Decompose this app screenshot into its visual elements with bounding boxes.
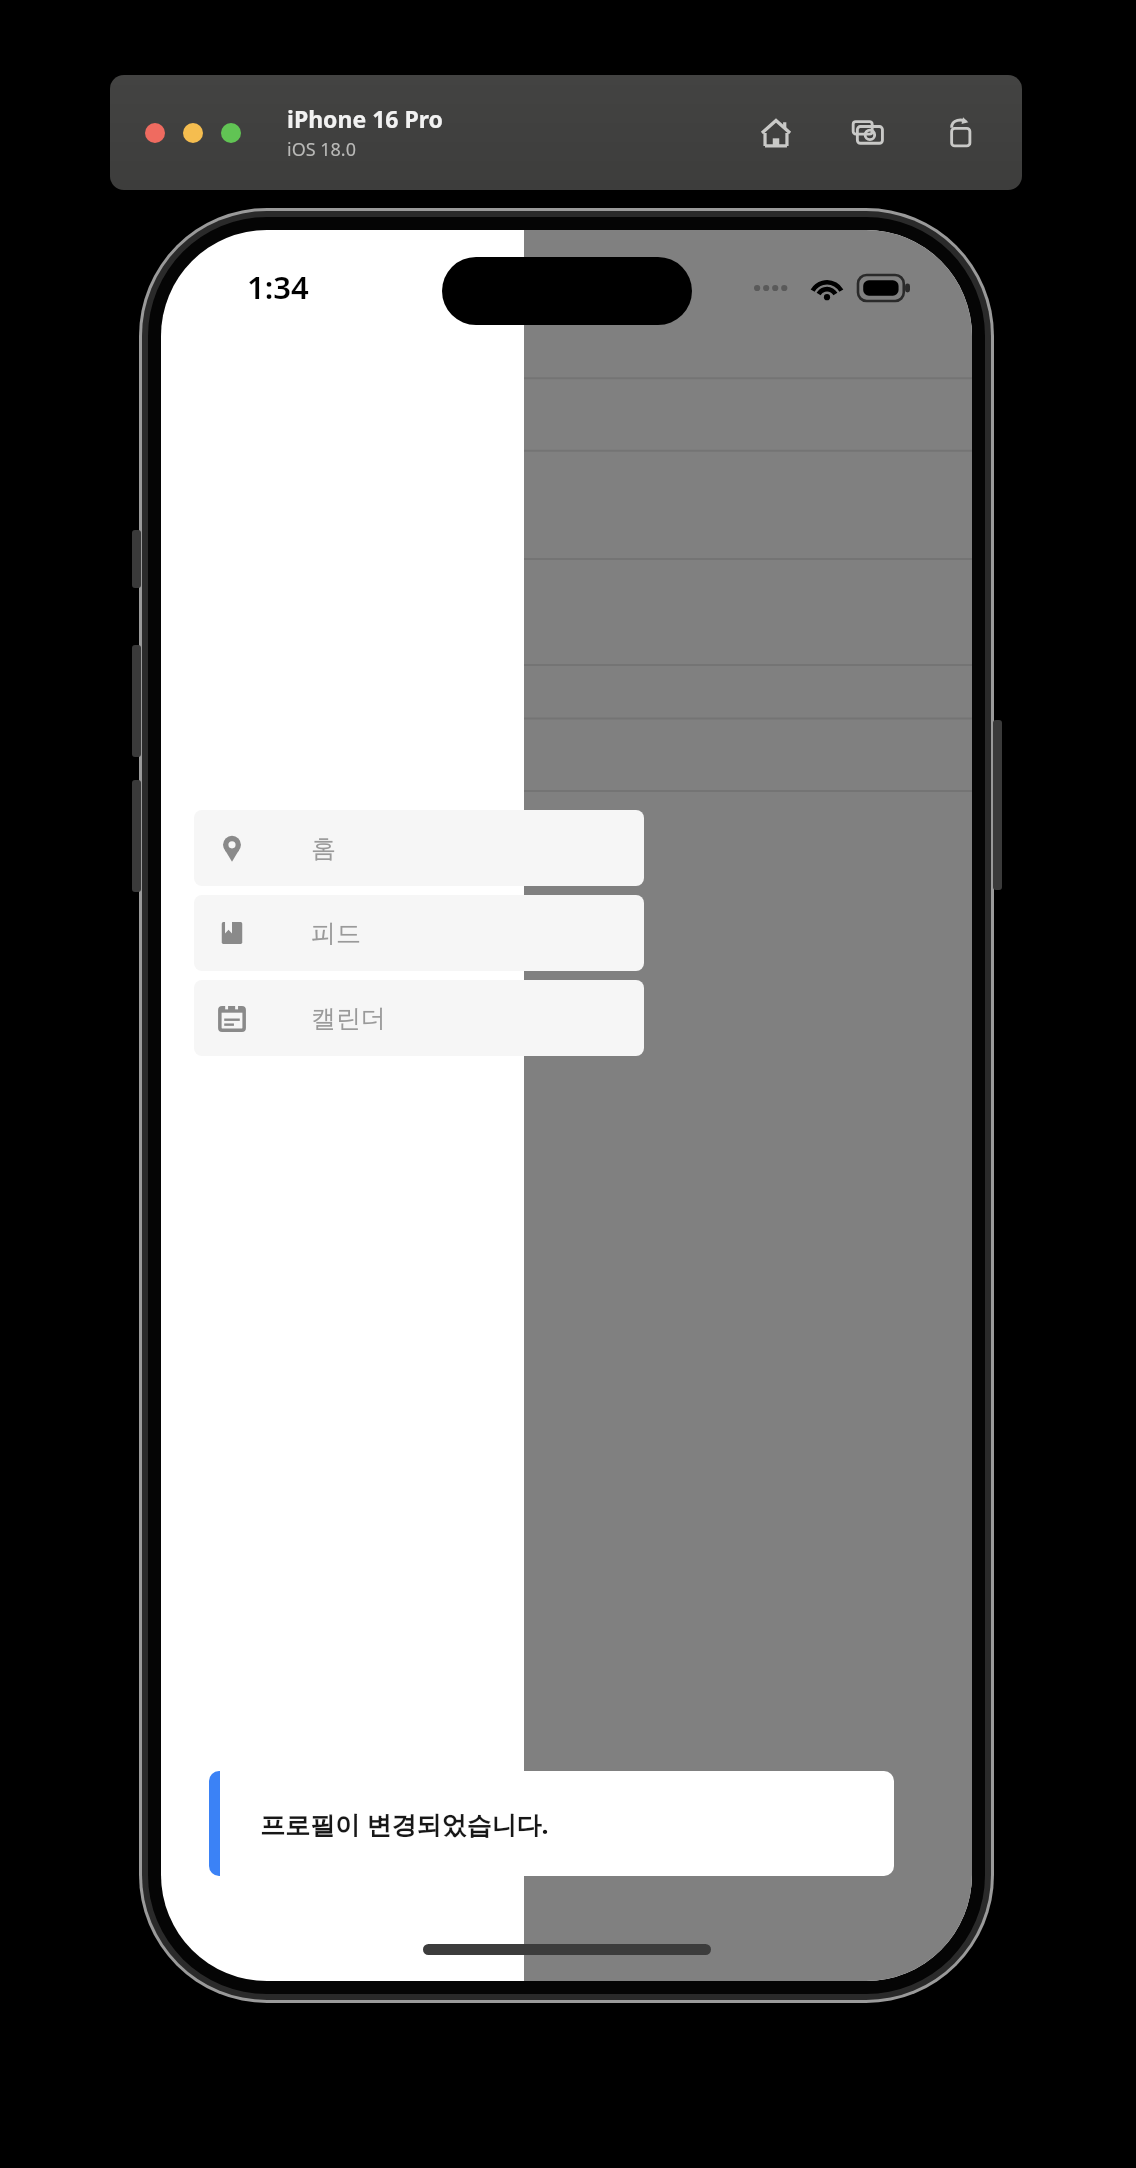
button[interactable]: 캘린더 — [194, 980, 644, 1056]
button[interactable]: 프로필이 변경되었습니다. — [209, 1771, 894, 1876]
staticText: 피드 — [311, 918, 361, 949]
button[interactable]: 홈 — [194, 810, 644, 886]
staticText: 캘린더 — [311, 1003, 386, 1034]
staticText: 1:34 — [247, 266, 309, 308]
staticText: iPhone 16 Pro — [287, 103, 443, 134]
button[interactable]: Rotate — [938, 111, 982, 155]
button[interactable]: Home — [754, 111, 798, 155]
button[interactable]: Screenshot — [846, 111, 890, 155]
staticText: 프로필이 변경되었습니다. — [260, 1807, 549, 1841]
staticText: 홈 — [311, 833, 336, 864]
button[interactable]: 피드 — [194, 895, 644, 971]
staticText: iOS 18.0 — [287, 137, 356, 162]
